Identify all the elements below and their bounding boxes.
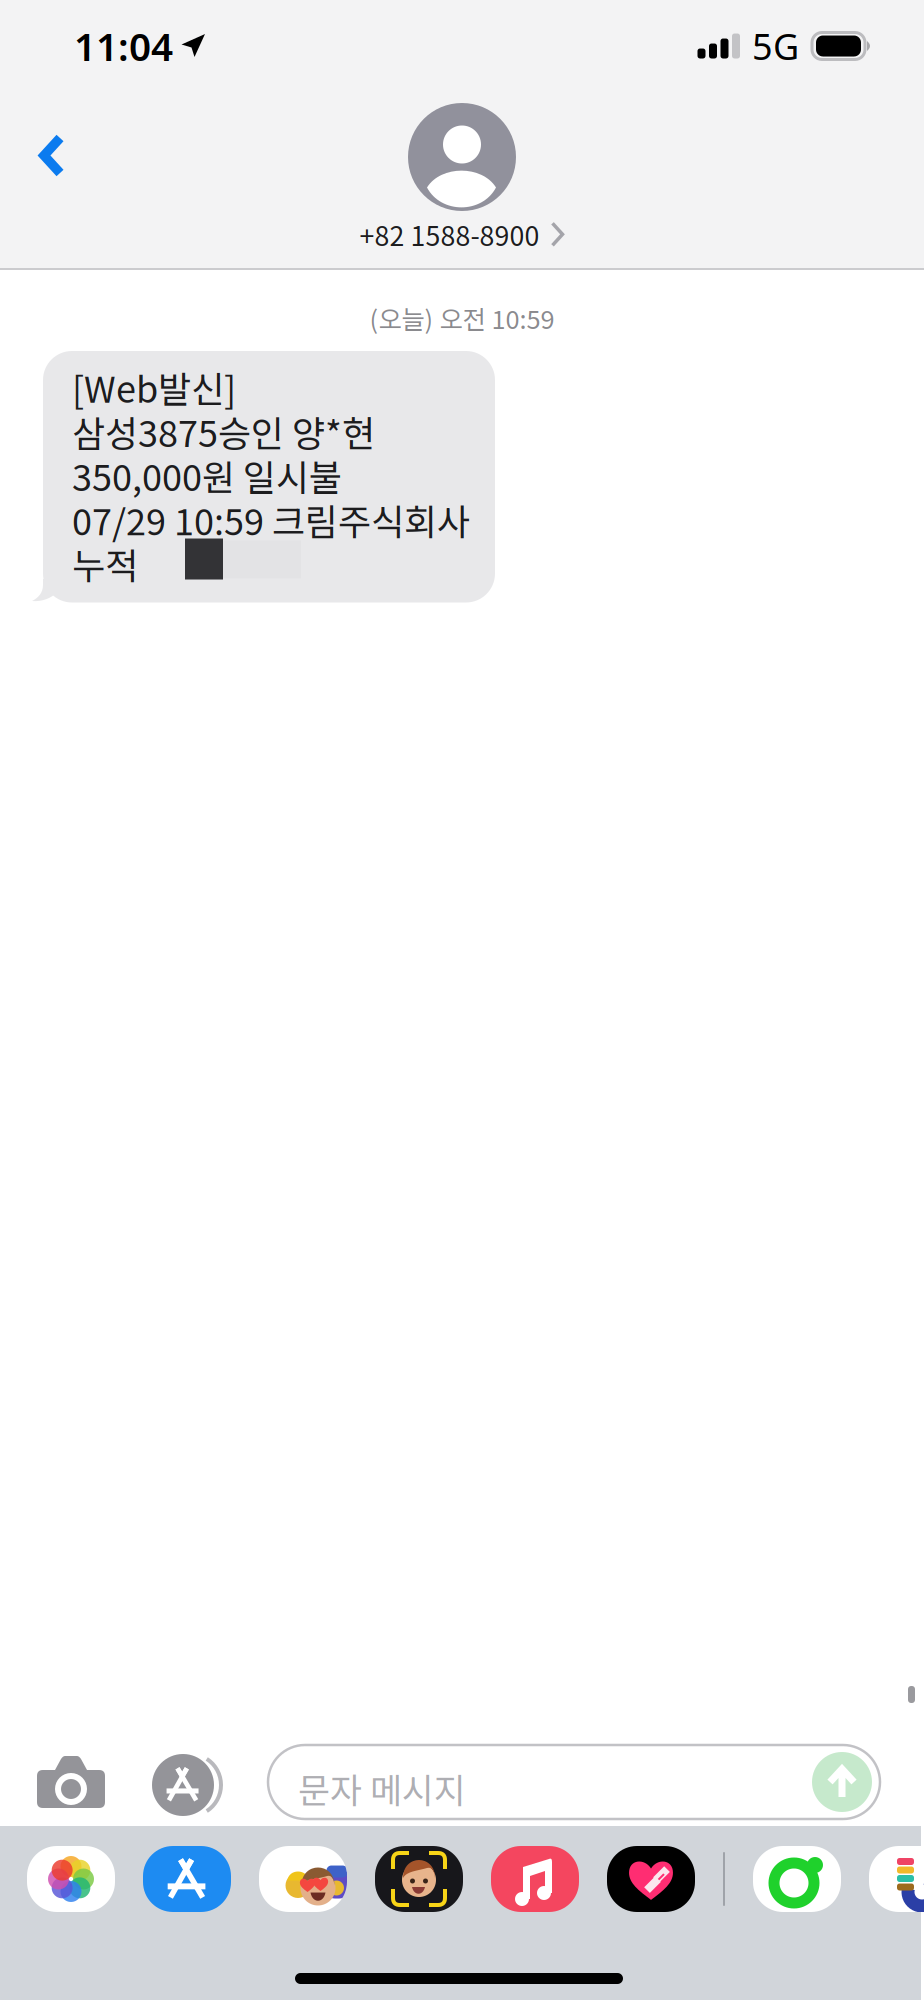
button[interactable]: App Store [143,1846,231,1912]
button[interactable]: App [869,1846,924,1912]
staticText: +82 1588-8900 [359,215,539,254]
staticText: 11:04 [74,20,173,72]
button[interactable]: Apps [140,1740,236,1830]
staticText: 누적 [72,537,138,589]
button[interactable]: Photos [27,1846,115,1912]
staticText: 350,000원 일시불 [72,449,342,501]
staticText: 5G [752,22,799,70]
staticText: 삼성3875승인 양*현 [72,405,375,457]
button[interactable]: Camera [23,1742,119,1822]
button[interactable]: Back [19,113,85,198]
button[interactable]: Health [607,1846,695,1912]
button[interactable]: Send [812,1752,872,1812]
staticText: 문자 메시지 [298,1763,466,1813]
staticText: (오늘) 오전 10:59 [369,300,554,336]
staticText: 07/29 10:59 크림주식회사 [72,493,470,545]
button[interactable]: Music [491,1846,579,1912]
button[interactable]: Stickers [259,1846,347,1912]
button[interactable]: +82 1588-8900 [212,103,712,279]
button[interactable]: App [753,1846,841,1912]
staticText: [Web발신] [72,361,236,413]
button[interactable]: Memoji [375,1846,463,1912]
